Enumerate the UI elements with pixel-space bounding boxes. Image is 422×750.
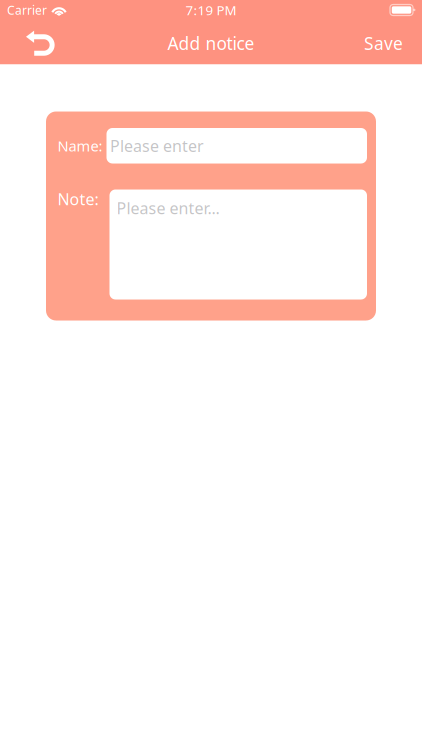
button[interactable]: Back: [0, 20, 62, 64]
staticText: Note:: [57, 188, 98, 210]
button[interactable]: Please enter...: [109, 189, 367, 299]
button[interactable]: Please enter: [106, 128, 367, 163]
staticText: 7:19 PM: [185, 1, 236, 19]
staticText: Please enter...: [116, 197, 219, 219]
staticText: Please enter: [110, 135, 204, 156]
staticText: Save: [364, 32, 403, 55]
staticText: Name:: [57, 136, 102, 155]
staticText: Add notice: [167, 32, 254, 55]
staticText: Carrier: [7, 2, 47, 18]
button[interactable]: Save: [354, 20, 413, 64]
